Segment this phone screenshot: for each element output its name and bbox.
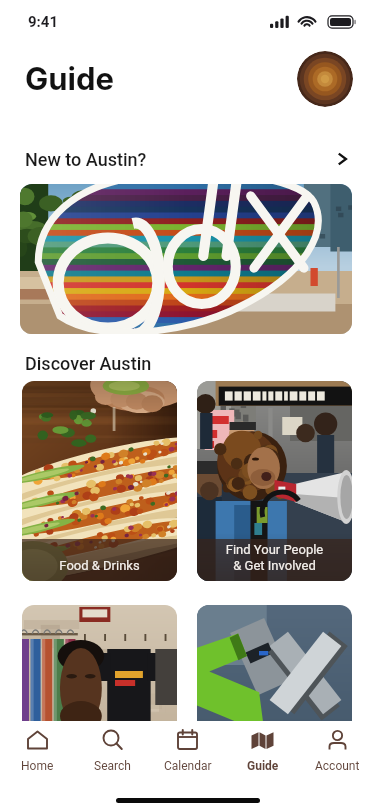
button[interactable]: [197, 605, 352, 805]
button[interactable]: Account: [300, 721, 375, 775]
button[interactable]: Find Your People & Get Involved: [197, 381, 352, 581]
button[interactable]: [20, 184, 352, 334]
button[interactable]: Food & Drinks: [22, 381, 177, 581]
staticText: Search: [94, 759, 131, 773]
staticText: Guide: [25, 60, 114, 98]
staticText: Find Your People & Get Involved: [197, 542, 352, 573]
staticText: Account: [315, 759, 360, 773]
button[interactable]: Home: [0, 721, 75, 775]
staticText: Calendar: [164, 759, 212, 773]
staticText: Food & Drinks: [22, 558, 177, 573]
staticText: New to Austin?: [25, 149, 147, 170]
button[interactable]: [22, 605, 177, 805]
button[interactable]: Calendar: [150, 721, 225, 775]
button[interactable]: Profile: [297, 51, 353, 107]
other: See all: [333, 150, 351, 168]
button[interactable]: Search: [75, 721, 150, 775]
button[interactable]: New to Austin?: [0, 144, 375, 174]
staticText: Home: [21, 759, 54, 773]
staticText: Discover Austin: [25, 353, 152, 373]
staticText: 9:41: [28, 13, 59, 31]
button[interactable]: Guide: [225, 721, 300, 775]
staticText: Guide: [247, 759, 279, 773]
